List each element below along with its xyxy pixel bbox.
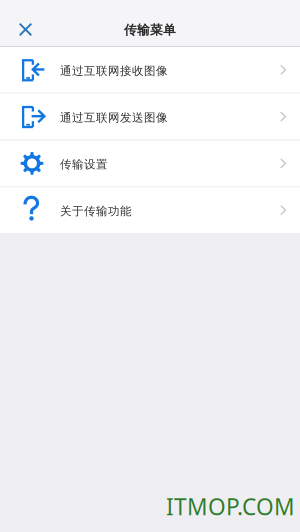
staticText: 通过互联网发送图像 <box>60 110 168 125</box>
staticText: 传输设置 <box>60 157 108 172</box>
button[interactable]: 关于传输功能 <box>0 187 300 233</box>
button[interactable]: 通过互联网接收图像 <box>0 47 300 93</box>
staticText: 通过互联网接收图像 <box>60 64 168 78</box>
button[interactable]: Close <box>0 0 46 46</box>
button[interactable]: 通过互联网发送图像 <box>0 94 300 140</box>
button[interactable]: 传输设置 <box>0 140 300 186</box>
staticText: ITMOP.COM <box>166 491 295 522</box>
staticText: 关于传输功能 <box>60 204 132 218</box>
staticText: 传输菜单 <box>124 22 176 38</box>
